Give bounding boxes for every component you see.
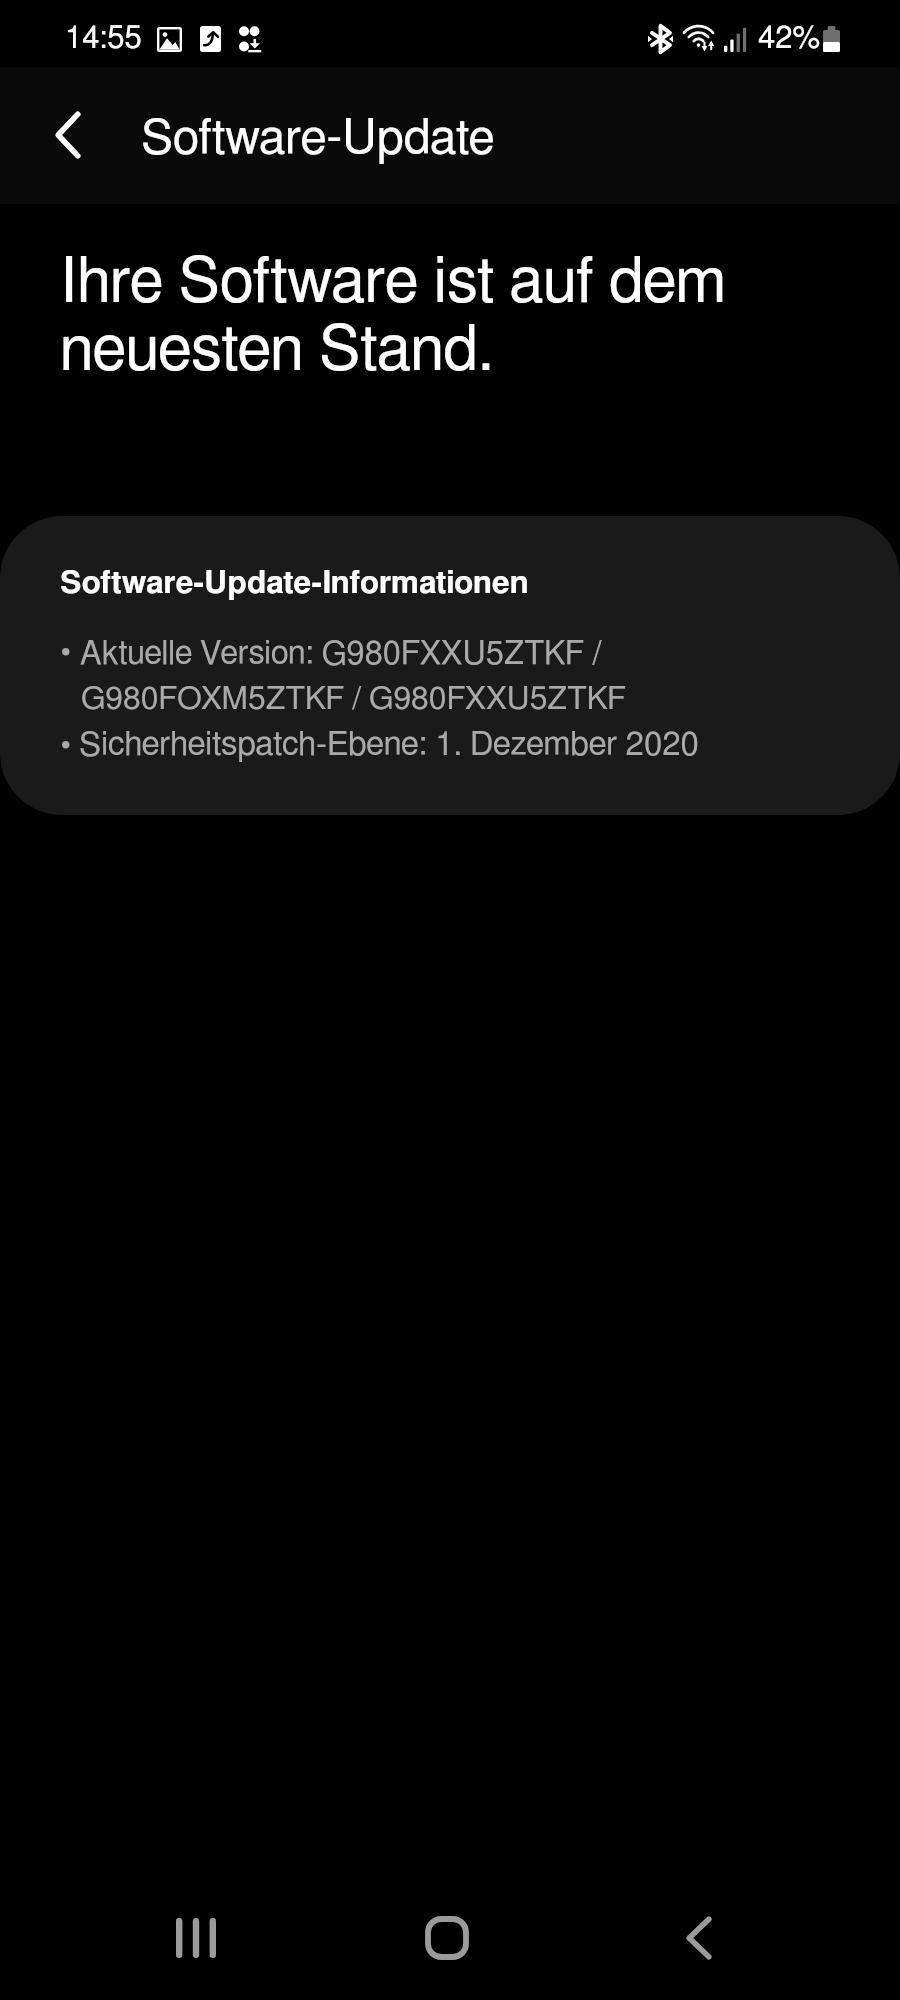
button[interactable]: Home <box>402 1893 492 1983</box>
staticText: Software-Update <box>141 115 495 163</box>
staticText: 14:55 <box>65 23 142 54</box>
staticText: 42% <box>758 23 821 54</box>
staticText: neuesten Stand. <box>60 320 494 382</box>
button[interactable]: Back <box>654 1893 744 1983</box>
staticText: Aktuelle Version: G980FXXU5ZTKF / <box>80 638 602 671</box>
staticText: G980FOXM5ZTKF / G980FXXU5ZTKF <box>81 684 626 716</box>
staticText: Ihre Software ist auf dem <box>60 252 726 314</box>
staticText: Sicherheitspatch-Ebene: 1. Dezember 2020 <box>79 729 699 762</box>
staticText: Software-Update-Informationen <box>60 568 529 600</box>
button[interactable]: Recent apps <box>151 1893 241 1983</box>
button[interactable]: Navigate up <box>23 90 113 180</box>
